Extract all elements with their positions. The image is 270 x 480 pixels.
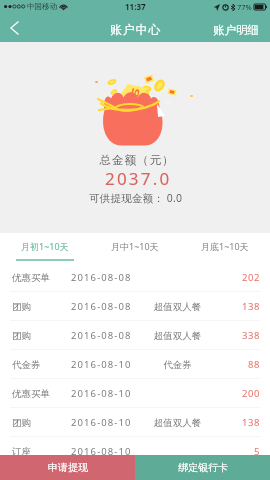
staticText: 77%	[237, 2, 252, 12]
staticText: 2016-08-08	[71, 300, 143, 313]
button[interactable]: 申请提现	[0, 455, 135, 480]
button[interactable]: 订座	[0, 437, 270, 466]
staticText: 月底1~10天	[201, 240, 249, 252]
staticText: 团购	[12, 301, 71, 313]
staticText: 2016-08-10	[71, 387, 143, 400]
staticText: 338	[234, 329, 260, 342]
staticText: 团购	[12, 330, 71, 342]
staticText: 可供提现金额： 0.0	[89, 191, 183, 205]
staticText: 5	[234, 445, 260, 458]
button[interactable]: 月初1~10天	[0, 233, 90, 263]
staticText: 优惠买单	[12, 388, 71, 400]
staticText: 账户中心	[110, 22, 162, 37]
button[interactable]: 代金券	[0, 350, 270, 379]
staticText: 团购	[12, 417, 71, 429]
staticText: 账户明细	[213, 23, 259, 37]
staticText: 超值双人餐	[132, 301, 223, 313]
staticText: 超值双人餐	[132, 417, 223, 429]
staticText: 2016-08-10	[71, 358, 143, 371]
staticText: 订座	[12, 446, 71, 458]
button[interactable]: Back	[0, 13, 28, 42]
staticText: 202	[234, 271, 260, 284]
staticText: 200	[234, 387, 260, 400]
staticText	[132, 445, 223, 458]
staticText: 优惠买单	[12, 272, 71, 284]
staticText: 绑定银行卡	[178, 461, 228, 474]
staticText: 超值双人餐	[132, 330, 223, 342]
staticText: 月初1~10天	[21, 240, 69, 252]
button[interactable]: 绑定银行卡	[135, 455, 270, 480]
staticText: 138	[234, 300, 260, 313]
staticText: 2016-08-08	[71, 271, 143, 284]
button[interactable]: 优惠买单	[0, 379, 270, 408]
staticText: 中国移动	[27, 2, 57, 11]
staticText: 88	[234, 358, 260, 371]
button[interactable]: 团购	[0, 408, 270, 437]
staticText: 代金券	[12, 359, 71, 371]
button[interactable]: 团购	[0, 292, 270, 321]
staticText: 代金券	[132, 359, 223, 371]
button[interactable]: 月中1~10天	[90, 233, 180, 263]
staticText: 2016-08-10	[71, 445, 143, 458]
staticText: 138	[234, 416, 260, 429]
button[interactable]: 账户明细	[203, 13, 270, 42]
staticText: 11:37	[125, 1, 146, 12]
staticText: 申请提现	[48, 461, 88, 474]
staticText: 总金额（元）	[99, 153, 174, 167]
button[interactable]: 月底1~10天	[180, 233, 270, 263]
staticText: 月中1~10天	[111, 240, 159, 252]
button[interactable]: 团购	[0, 321, 270, 350]
staticText: 2016-08-08	[71, 329, 143, 342]
staticText: 2016-08-10	[71, 416, 143, 429]
button[interactable]: 优惠买单	[0, 263, 270, 292]
staticText: 2037.0	[105, 167, 172, 190]
